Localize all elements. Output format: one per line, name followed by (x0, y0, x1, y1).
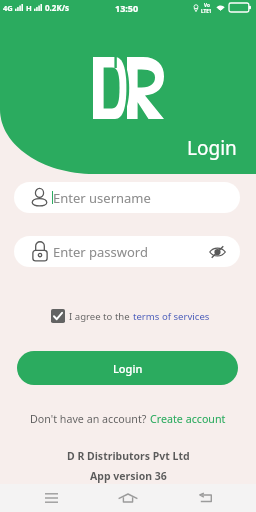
staticText: 0.2K/s (45, 2, 70, 13)
staticText: Don't have an account? (30, 412, 150, 427)
staticText: Enter password (53, 243, 148, 261)
staticText: I agree to the (69, 310, 133, 323)
staticText: H (26, 3, 32, 13)
staticText: terms of services (133, 310, 210, 323)
button[interactable]: Show password (209, 246, 226, 258)
staticText: Login (187, 135, 237, 161)
staticText: Login (113, 361, 143, 376)
staticText: 4G (3, 3, 13, 13)
button[interactable]: Login (17, 351, 238, 385)
staticText: LTE1 (201, 8, 212, 14)
staticText: 13:50 (115, 2, 139, 14)
button[interactable]: Recents (30, 484, 76, 512)
button[interactable]: Back (181, 484, 227, 512)
button[interactable]: I agree to the (49, 307, 212, 325)
button[interactable]: Enter username (14, 182, 240, 213)
button[interactable]: Home (105, 484, 151, 512)
staticText: D R Distributors Pvt Ltd (67, 449, 190, 463)
button[interactable]: Create account (150, 412, 226, 427)
staticText: Vo (204, 2, 210, 8)
staticText: App version 36 (90, 469, 167, 483)
staticText: Enter username (53, 189, 151, 207)
button[interactable]: Enter password (14, 236, 240, 267)
